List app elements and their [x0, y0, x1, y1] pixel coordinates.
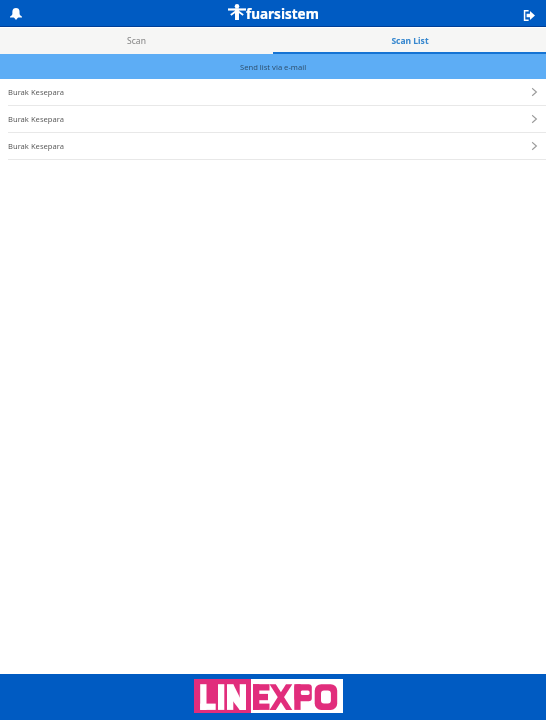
button[interactable]: Send list via e-mail	[0, 54, 546, 79]
button[interactable]: Notifications	[4, 2, 28, 26]
staticText: Burak Kesepara	[8, 87, 64, 97]
staticText: Burak Kesepara	[8, 141, 64, 151]
button[interactable]: LINEXPO	[194, 679, 343, 713]
button[interactable]: Logout	[517, 2, 541, 26]
button[interactable]: Scan List	[273, 27, 546, 54]
staticText: Scan	[127, 35, 146, 47]
button[interactable]: Scan	[0, 27, 273, 54]
staticText: fuarsistem	[246, 5, 319, 23]
button[interactable]: Burak Kesepara	[0, 79, 546, 105]
button[interactable]: Burak Kesepara	[0, 133, 546, 159]
button[interactable]: Burak Kesepara	[0, 106, 546, 132]
staticText: Burak Kesepara	[8, 114, 64, 124]
staticText: Send list via e-mail	[240, 62, 307, 72]
staticText: Scan List	[391, 35, 429, 47]
